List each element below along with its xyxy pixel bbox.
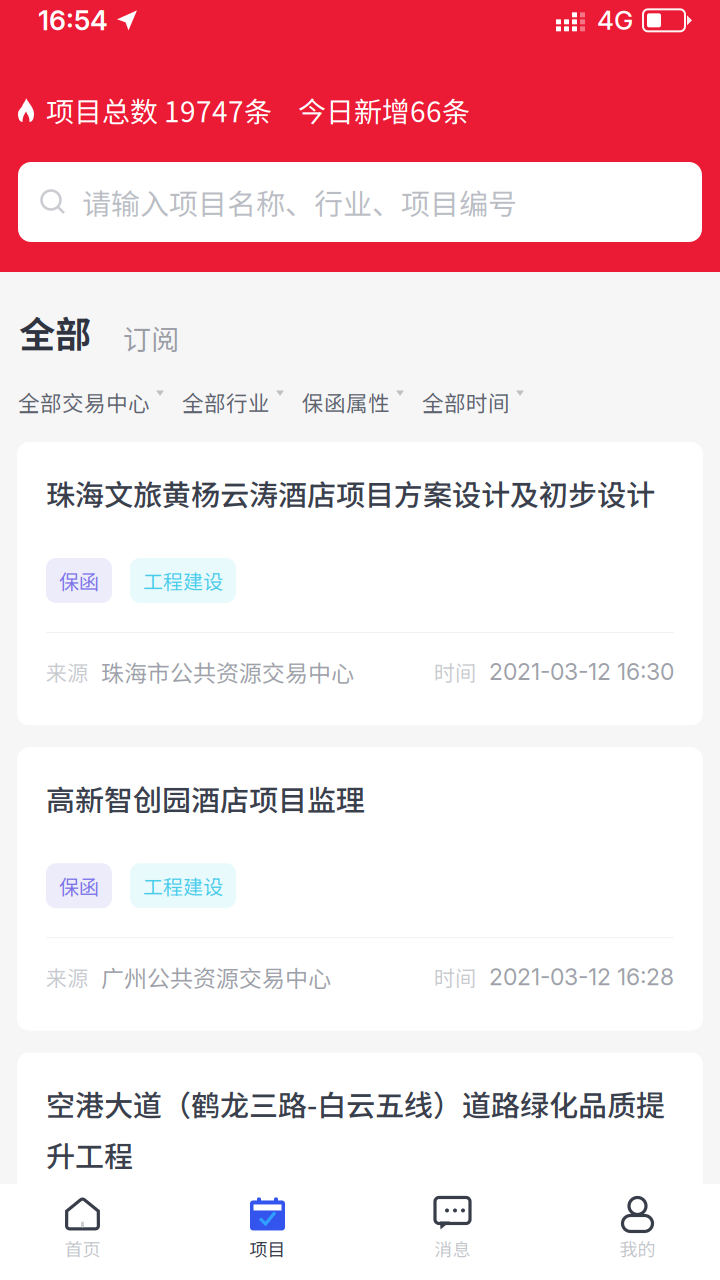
staticText: 2021-03-12 16:28 (489, 963, 674, 991)
button[interactable]: 全部行业 (182, 386, 284, 417)
staticText: 保函 (59, 566, 99, 595)
staticText: 16:54 (38, 4, 108, 37)
staticText: 时间 (434, 962, 476, 992)
staticText: 珠海文旅黄杨云涛酒店项目方案设计及初步设计 (46, 472, 655, 514)
staticText: 保函属性 (302, 386, 390, 417)
staticText: 工程建设 (143, 566, 223, 595)
staticText: 珠海市公共资源交易中心 (101, 655, 354, 688)
staticText: 全部时间 (422, 386, 510, 417)
staticText: 保函 (59, 871, 99, 900)
staticText: 全部行业 (182, 386, 270, 417)
button[interactable]: 空港大道（鹤龙三路-白云五线）道路绿化品质提升工程 (17, 1052, 703, 1280)
button[interactable]: 全部时间 (422, 386, 524, 417)
staticText: 空港大道（鹤龙三路-白云五线）道路绿化品质提升工程 (46, 1082, 665, 1175)
button[interactable]: 全部交易中心 (18, 386, 164, 417)
staticText: 项目总数 19747条 (46, 90, 272, 130)
staticText: 我的 (619, 1235, 655, 1262)
staticText: 项目 (249, 1235, 285, 1262)
staticText: 首页 (64, 1235, 100, 1262)
button[interactable]: 我的 (545, 1180, 720, 1280)
staticText: 时间 (434, 656, 476, 687)
staticText: 2021-03-12 16:30 (489, 658, 674, 685)
staticText: 请输入项目名称、行业、项目编号 (82, 181, 517, 223)
staticText: 今日新增66条 (298, 90, 470, 130)
staticText: 工程建设 (143, 871, 223, 900)
button[interactable]: 首页 (0, 1180, 175, 1280)
staticText: 全部交易中心 (18, 386, 150, 417)
staticText: 4G (597, 5, 633, 36)
staticText: 广州公共资源交易中心 (101, 960, 331, 993)
staticText: 来源 (46, 962, 88, 992)
button[interactable]: 高新智创园酒店项目监理 (17, 747, 703, 1031)
button[interactable]: 全部 (19, 306, 91, 358)
button[interactable]: 请输入项目名称、行业、项目编号 (18, 162, 702, 242)
staticText: 消息 (434, 1235, 470, 1262)
staticText: 保函 (59, 1227, 99, 1256)
button[interactable]: 项目 (175, 1180, 360, 1280)
staticText: 高新智创园酒店项目监理 (46, 777, 365, 819)
button[interactable]: 消息 (360, 1180, 545, 1280)
button[interactable]: 订阅 (123, 317, 179, 358)
button[interactable]: 珠海文旅黄杨云涛酒店项目方案设计及初步设计 (17, 442, 703, 725)
staticText: 订阅 (123, 317, 179, 358)
button[interactable]: 保函属性 (302, 386, 404, 417)
staticText: 来源 (46, 656, 88, 687)
staticText: 全部 (19, 306, 91, 358)
